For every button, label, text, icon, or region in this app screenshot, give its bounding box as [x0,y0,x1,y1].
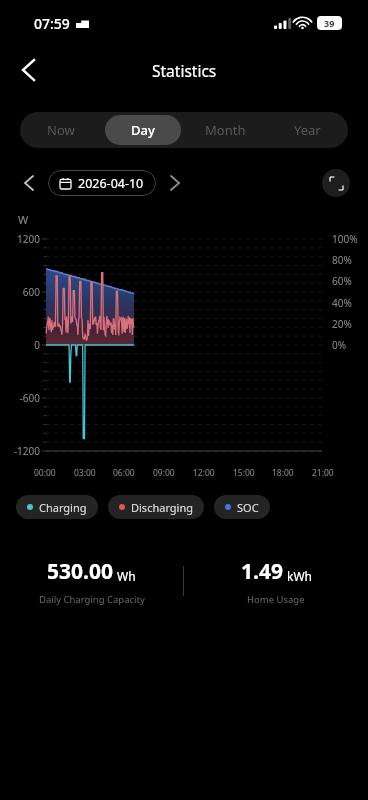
button[interactable]: Now [23,115,99,145]
staticText: 20% [332,317,368,331]
button[interactable]: Next day [160,168,190,198]
button[interactable]: Discharging [108,495,204,519]
staticText: 39 [324,17,335,29]
button[interactable]: 2026-04-10 [48,170,156,196]
staticText: 530.00 [47,557,113,586]
staticText: SOC [237,500,259,515]
button[interactable]: Previous day [14,168,44,198]
staticText: Home Usage [247,593,305,606]
staticText: 21:00 [312,467,334,479]
staticText: 18:00 [272,467,294,479]
staticText: 03:00 [74,467,96,479]
button[interactable]: Fullscreen [322,169,350,197]
staticText: Daily Charging Capacity [39,593,145,606]
staticText: -1200 [0,444,40,458]
staticText: W [18,212,29,227]
button[interactable]: SOC [214,495,270,519]
staticText: 00:00 [34,467,56,479]
button[interactable]: Charging [16,495,98,519]
staticText: Statistics [152,60,217,81]
staticText: 0 [0,338,40,352]
staticText: 1200 [0,232,40,246]
button[interactable]: Year [269,115,345,145]
staticText: Month [205,121,246,139]
staticText: -600 [0,391,40,405]
button[interactable]: Day [105,115,181,145]
staticText: kWh [287,568,312,584]
staticText: 12:00 [193,467,215,479]
staticText: Year [294,121,321,139]
staticText: 2026-04-10 [78,175,144,192]
staticText: 60% [332,274,368,288]
staticText: Now [47,121,75,139]
staticText: 100% [332,232,368,246]
staticText: 600 [0,285,40,299]
button[interactable]: Back [8,50,48,90]
staticText: Wh [117,568,136,584]
staticText: 06:00 [113,467,135,479]
staticText: 07:59 [34,14,70,33]
staticText: 40% [332,296,368,310]
staticText: 1.49 [241,557,283,586]
staticText: 0% [332,338,368,352]
staticText: Discharging [131,500,193,515]
button[interactable]: Month [187,115,263,145]
staticText: 80% [332,253,368,267]
staticText: Charging [39,500,87,515]
staticText: Day [131,121,155,139]
staticText: 09:00 [153,467,175,479]
staticText: 15:00 [233,467,255,479]
